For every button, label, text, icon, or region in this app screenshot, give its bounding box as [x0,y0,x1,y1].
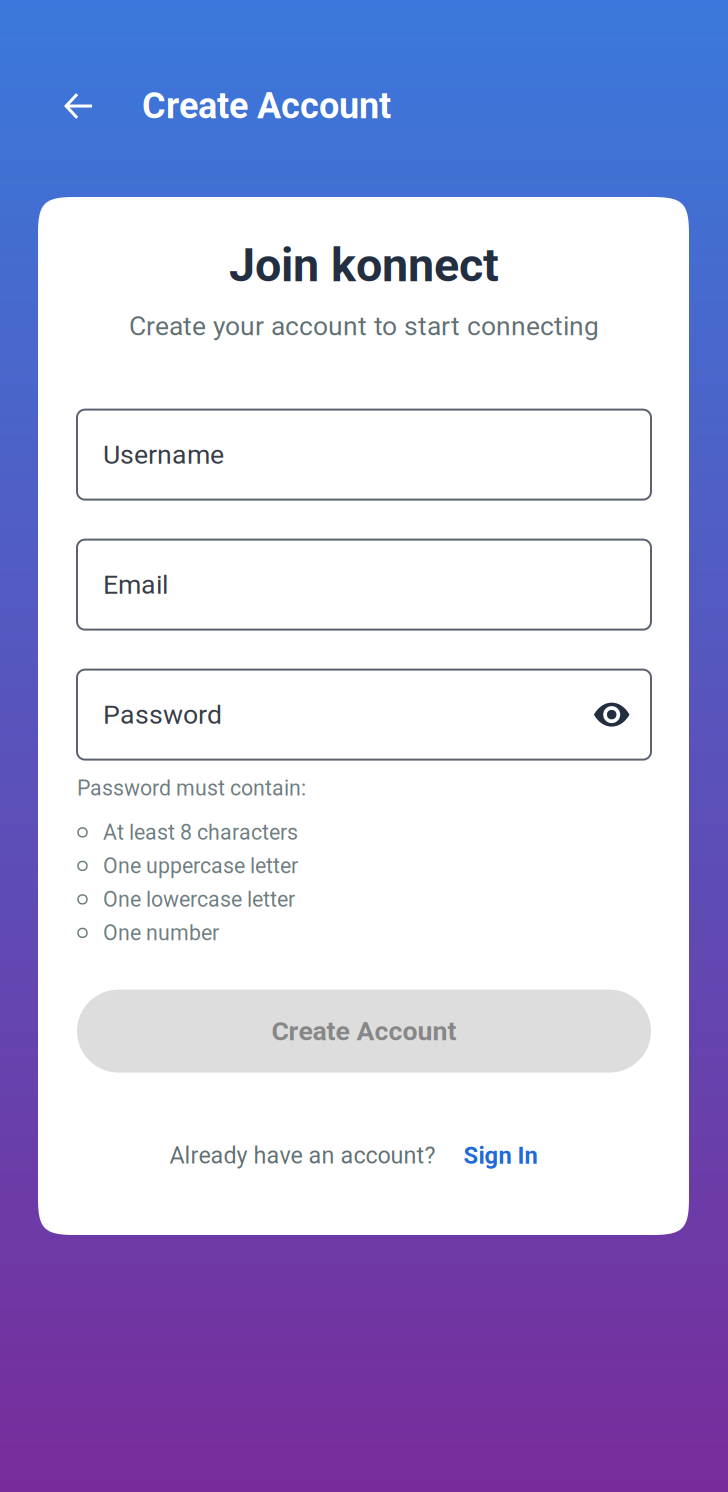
staticText: Create Account [271,1015,456,1047]
staticText: Create Account [142,85,391,127]
staticText: Username [103,439,224,470]
staticText: Already have an account? [169,1142,435,1169]
button[interactable]: Create Account [77,990,651,1073]
staticText: At least 8 characters [103,820,298,845]
staticText: Password must contain: [77,776,306,801]
staticText: Join konnect [229,238,499,293]
button[interactable]: Sign In [435,1142,558,1169]
staticText: Create your account to start connecting [129,311,599,342]
staticText: One lowercase letter [103,887,295,912]
staticText: One uppercase letter [103,853,298,878]
staticText: Email [103,569,168,600]
staticText: Sign In [463,1142,537,1169]
button[interactable]: Show password [593,702,630,727]
button[interactable]: Back [57,84,101,128]
staticText: One number [103,920,219,945]
staticText: Password [103,699,222,730]
